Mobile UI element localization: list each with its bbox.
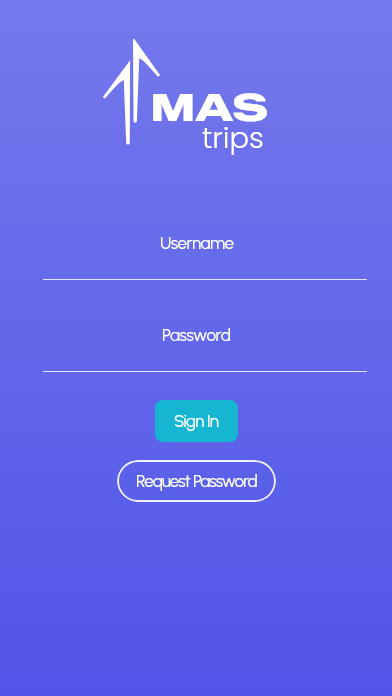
button[interactable]: Username	[43, 228, 367, 281]
other: MAS trips logo	[100, 36, 164, 148]
button[interactable]: Password	[43, 320, 367, 373]
staticText: Sign In	[174, 411, 219, 431]
staticText: Request Password	[136, 471, 257, 491]
staticText: Password	[162, 325, 231, 345]
staticText: MAS	[151, 85, 268, 130]
button[interactable]: Sign In	[155, 400, 238, 442]
staticText: trips	[202, 118, 264, 159]
button[interactable]: Request Password	[117, 460, 276, 502]
staticText: Username	[160, 233, 234, 253]
